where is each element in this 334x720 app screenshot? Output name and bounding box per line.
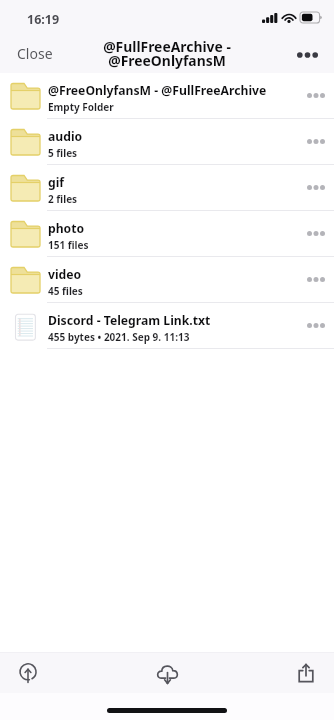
button[interactable]: Row options xyxy=(295,125,334,158)
staticText: 2 files xyxy=(48,192,78,206)
button[interactable]: More options xyxy=(287,38,334,68)
button[interactable]: Row options xyxy=(295,79,334,112)
button[interactable]: Row options xyxy=(295,171,334,204)
button[interactable]: @FreeOnlyfansM - @FullFreeArchive xyxy=(0,73,334,119)
staticText: audio xyxy=(48,128,83,145)
staticText: 16:19 xyxy=(27,11,60,28)
staticText: 455 bytes • 2021. Sep 9. 11:13 xyxy=(48,330,190,344)
staticText: photo xyxy=(48,220,85,237)
button[interactable]: Close xyxy=(0,35,70,72)
button[interactable]: Discord - Telegram Link.txt xyxy=(0,303,334,349)
staticText: @FreeOnlyfansM - @FullFreeArchive xyxy=(48,82,267,99)
button[interactable]: Row options xyxy=(295,309,334,342)
staticText: Empty Folder xyxy=(48,100,114,114)
button[interactable]: audio xyxy=(0,119,334,165)
button[interactable]: Row options xyxy=(295,217,334,250)
staticText: Close xyxy=(17,44,53,63)
staticText: Discord - Telegram Link.txt xyxy=(48,312,211,329)
staticText: 151 files xyxy=(48,238,89,252)
button[interactable]: Upload xyxy=(0,653,56,693)
staticText: video xyxy=(48,266,82,283)
staticText: 45 files xyxy=(48,284,83,298)
button[interactable]: Row options xyxy=(295,263,334,296)
staticText: 5 files xyxy=(48,146,78,160)
staticText: @FullFreeArchive - @FreeOnlyfansM xyxy=(103,37,231,70)
staticText: gif xyxy=(48,174,65,191)
button[interactable]: Download xyxy=(139,653,195,693)
button[interactable]: gif xyxy=(0,165,334,211)
button[interactable]: photo xyxy=(0,211,334,257)
button[interactable]: video xyxy=(0,257,334,303)
button[interactable]: Share xyxy=(278,653,334,693)
